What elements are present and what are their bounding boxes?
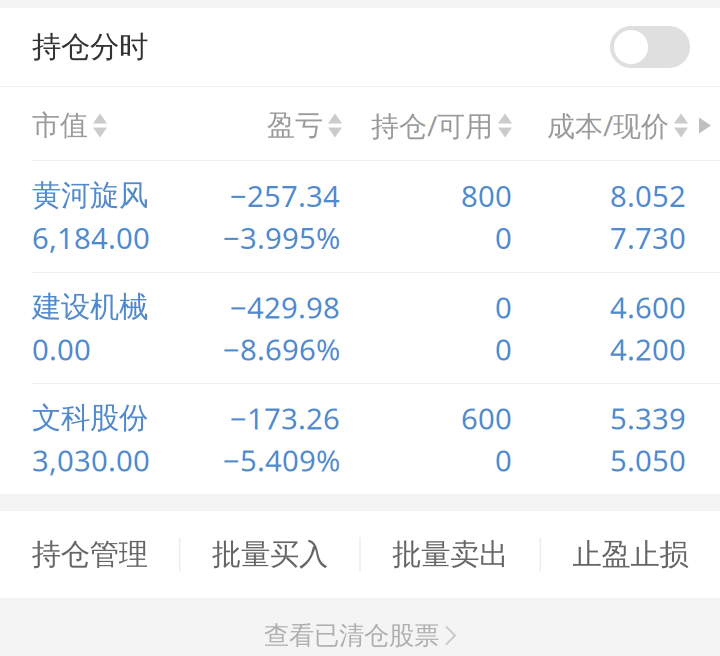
staticText: 黄河旋风 <box>32 177 148 213</box>
staticText: 持仓分时 <box>32 29 148 65</box>
staticText: 批量买入 <box>212 536 328 572</box>
staticText: 查看已清仓股票 <box>264 620 439 651</box>
staticText: −173.26 <box>230 398 340 437</box>
staticText: −8.696% <box>223 329 340 368</box>
staticText: −429.98 <box>230 287 340 326</box>
staticText: 持仓/可用 <box>371 107 493 144</box>
staticText: 建设机械 <box>32 289 148 325</box>
staticText: −3.995% <box>223 218 340 257</box>
staticText: 5.339 <box>610 398 686 437</box>
staticText: 文科股份 <box>32 400 148 436</box>
staticText: 0 <box>495 218 512 257</box>
staticText: 成本/现价 <box>547 107 669 144</box>
staticText: 盈亏 <box>267 108 323 143</box>
staticText: 7.730 <box>610 218 686 257</box>
staticText: 0 <box>495 440 512 479</box>
staticText: 0 <box>495 287 512 326</box>
staticText: −5.409% <box>223 440 340 479</box>
staticText: 0 <box>495 329 512 368</box>
staticText: 800 <box>461 176 512 215</box>
staticText: 止盈止损 <box>572 536 688 572</box>
button[interactable]: 市值 <box>32 108 107 143</box>
button[interactable]: 黄河旋风 <box>0 160 720 272</box>
button[interactable]: 盈亏 <box>267 108 342 143</box>
staticText: 4.600 <box>610 287 686 326</box>
button[interactable]: 成本/现价 <box>547 107 688 144</box>
button[interactable]: 建设机械 <box>0 272 720 383</box>
button[interactable]: 持仓分时开关 <box>610 26 690 68</box>
button[interactable]: 止盈止损 <box>541 511 720 598</box>
button[interactable]: 批量卖出 <box>360 511 540 598</box>
staticText: 0.00 <box>32 329 91 368</box>
staticText: 批量卖出 <box>392 536 508 572</box>
staticText: 市值 <box>32 108 88 143</box>
staticText: 3,030.00 <box>32 440 150 479</box>
button[interactable]: 持仓管理 <box>0 511 179 598</box>
staticText: −257.34 <box>230 176 340 215</box>
button[interactable]: 持仓/可用 <box>371 107 512 144</box>
button[interactable]: 文科股份 <box>0 383 720 494</box>
staticText: 8.052 <box>610 176 686 215</box>
button[interactable]: 更多列 <box>692 103 718 147</box>
button[interactable]: 查看已清仓股票 <box>0 598 720 656</box>
staticText: 600 <box>461 398 512 437</box>
staticText: 5.050 <box>610 440 686 479</box>
staticText: 4.200 <box>610 329 686 368</box>
button[interactable]: 批量买入 <box>180 511 359 598</box>
staticText: 6,184.00 <box>32 218 150 257</box>
staticText: 持仓管理 <box>32 536 148 572</box>
